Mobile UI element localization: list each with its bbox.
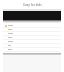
button[interactable] [3, 32, 61, 36]
button[interactable] [3, 40, 61, 44]
button[interactable] [3, 48, 61, 52]
button[interactable] [3, 24, 61, 28]
button[interactable] [3, 44, 61, 48]
staticText: Easy for kids [23, 3, 42, 7]
button[interactable] [3, 36, 61, 40]
staticText: simple tasks they can do [21, 8, 44, 11]
button[interactable] [3, 28, 61, 32]
